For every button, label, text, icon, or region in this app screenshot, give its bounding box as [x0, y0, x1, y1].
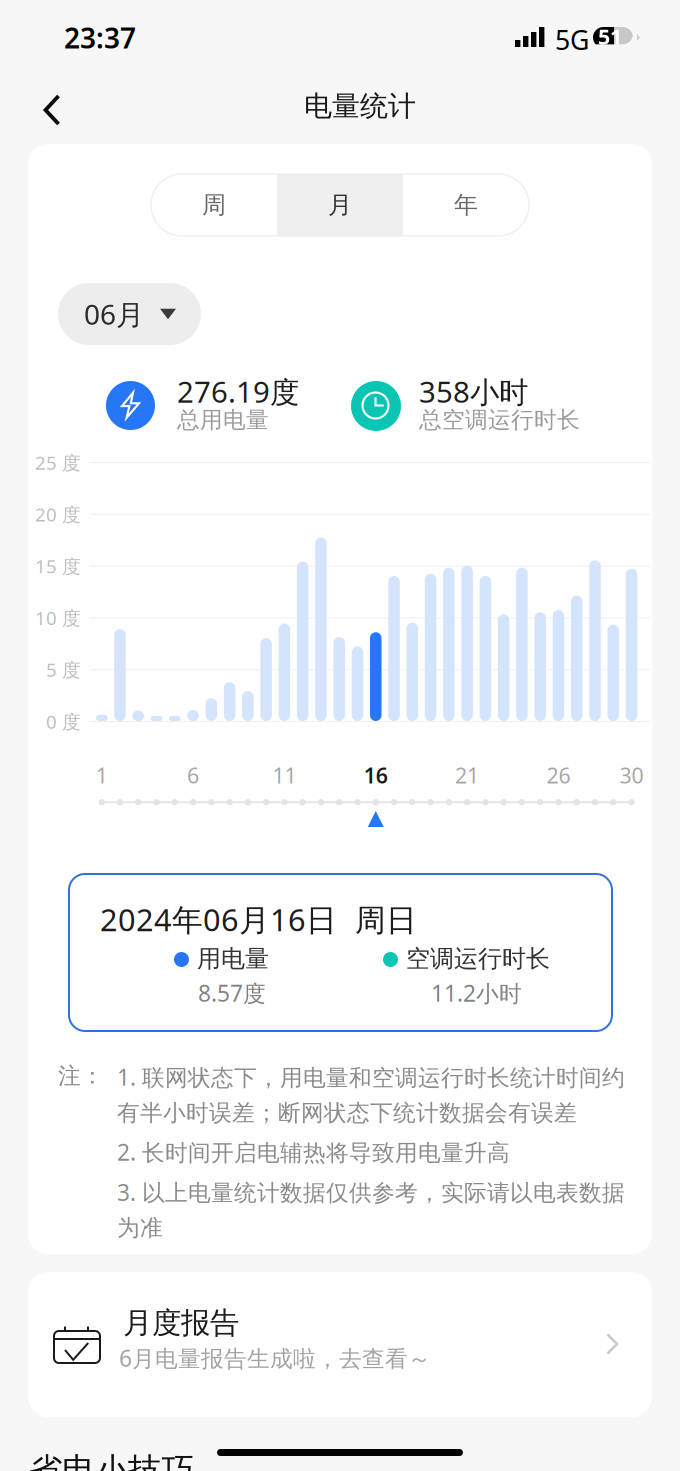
staticText: 空调运行时长	[406, 944, 550, 973]
button[interactable]: 月度报告	[28, 1272, 652, 1417]
staticText: 10 度	[35, 605, 81, 630]
button[interactable]: 周	[151, 174, 277, 236]
staticText: 总用电量	[177, 406, 269, 434]
staticText: 0 度	[46, 709, 81, 734]
staticText: 注：	[58, 1062, 104, 1090]
staticText: 月度报告	[123, 1305, 239, 1341]
staticText: 2. 长时间开启电辅热将导致用电量升高	[117, 1137, 510, 1167]
staticText: 21	[455, 761, 479, 789]
button[interactable]: 月	[277, 174, 403, 236]
staticText: 23:37	[64, 19, 136, 56]
staticText: 11	[272, 761, 296, 789]
staticText: 25 度	[35, 450, 81, 475]
staticText: 总空调运行时长	[419, 406, 580, 434]
staticText: 11.2小时	[431, 978, 522, 1008]
button[interactable]: 06月	[58, 283, 201, 345]
staticText: 26	[546, 761, 570, 789]
button[interactable]: 年	[403, 174, 529, 236]
staticText: 20 度	[35, 502, 81, 527]
staticText: 30	[619, 761, 643, 789]
staticText: 15 度	[35, 554, 81, 578]
staticText: 6	[187, 761, 199, 789]
staticText: 358小时	[419, 372, 528, 411]
staticText: 2024年06月16日 周日	[100, 899, 417, 940]
staticText: 5G	[555, 22, 589, 57]
staticText: 8.57度	[198, 978, 266, 1008]
staticText: 电量统计	[304, 89, 416, 123]
staticText: 16	[364, 761, 388, 789]
staticText: 月	[328, 190, 352, 220]
staticText: 6月电量报告生成啦，去查看～	[119, 1343, 431, 1373]
staticText: 省电小技巧	[29, 1450, 194, 1471]
staticText: 51	[598, 22, 622, 51]
staticText: 周	[202, 190, 226, 220]
staticText: 3. 以上电量统计数据仅供参考，实际请以电表数据为准	[117, 1177, 625, 1242]
staticText: 年	[454, 190, 478, 220]
staticText: 1	[96, 761, 108, 789]
staticText: 276.19度	[177, 372, 299, 411]
staticText: 5 度	[46, 657, 81, 682]
staticText: 用电量	[197, 944, 269, 973]
staticText: 1. 联网状态下，用电量和空调运行时长统计时间约有半小时误差；断网状态下统计数据…	[117, 1062, 625, 1127]
staticText: 06月	[84, 295, 144, 333]
button[interactable]: 返回	[26, 84, 78, 136]
